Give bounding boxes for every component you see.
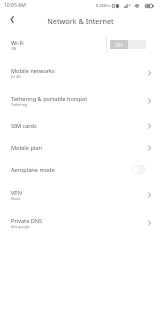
button[interactable]: SIM cards	[0, 115, 160, 137]
other: Open	[144, 190, 154, 200]
other: Open	[144, 143, 154, 153]
button[interactable]: Tethering & portable hotspot	[0, 87, 160, 115]
button[interactable]: Wi-Fi	[0, 31, 160, 59]
button[interactable]: VPN	[0, 181, 160, 209]
other: Open	[144, 218, 154, 228]
staticText: Jio 4G	[11, 74, 21, 79]
staticText: Off	[11, 46, 17, 51]
staticText: OFF	[115, 42, 124, 48]
staticText: 10:05 AM	[4, 2, 26, 9]
other: Open	[144, 68, 154, 78]
staticText: 0.2KB/s	[96, 3, 110, 8]
staticText: Tethering	[11, 102, 28, 107]
button[interactable]: Wi-Fi switch, off	[110, 40, 146, 49]
button[interactable]: Mobile networks	[0, 59, 160, 87]
staticText: SIM cards	[11, 122, 37, 130]
other: Open	[144, 121, 154, 131]
staticText: Mobile plan	[11, 144, 42, 152]
button[interactable]: Aeroplane mode	[0, 159, 160, 181]
staticText: Tethering & portable hotspot	[11, 95, 88, 103]
button[interactable]: Aeroplane mode switch, off	[131, 165, 146, 174]
button[interactable]: Mobile plan	[0, 137, 160, 159]
other: Open	[144, 96, 154, 106]
staticText: Network & Internet	[47, 16, 114, 26]
staticText: Aeroplane mode	[11, 166, 55, 174]
staticText: Wi-Fi	[11, 39, 24, 47]
staticText: None	[11, 196, 21, 201]
button[interactable]: Private DNS	[0, 209, 160, 237]
staticText: Mobile networks	[11, 67, 55, 75]
staticText: VPN	[11, 189, 22, 197]
staticText: dns.google	[11, 224, 30, 229]
button[interactable]: Back	[0, 11, 20, 31]
staticText: Private DNS	[11, 217, 43, 225]
